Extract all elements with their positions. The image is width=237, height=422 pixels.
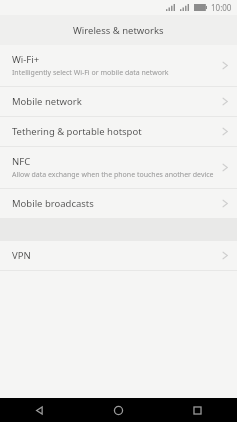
staticText: Intelligently select Wi-Fi or mobile dat… xyxy=(12,68,169,78)
button[interactable]: Mobile broadcasts xyxy=(0,189,237,218)
button[interactable]: VPN xyxy=(0,241,237,270)
staticText: Mobile network xyxy=(12,95,82,108)
staticText: Wireless & networks xyxy=(73,24,164,37)
staticText: Mobile broadcasts xyxy=(12,197,94,210)
staticText: 10:00 xyxy=(211,2,232,13)
button[interactable]: Back xyxy=(0,398,79,422)
button[interactable]: Recents xyxy=(158,398,237,422)
button[interactable]: Mobile network xyxy=(0,87,237,116)
button[interactable]: Tethering & portable hotspot xyxy=(0,117,237,146)
staticText: Wi-Fi+ xyxy=(12,53,40,66)
staticText: NFC xyxy=(12,155,31,168)
button[interactable]: NFC xyxy=(0,147,237,188)
staticText: VPN xyxy=(12,249,31,262)
staticText: Tethering & portable hotspot xyxy=(12,125,142,138)
button[interactable]: Wi-Fi+ xyxy=(0,45,237,86)
staticText: Allow data exchange when the phone touch… xyxy=(12,170,214,180)
button[interactable]: Home xyxy=(79,398,158,422)
